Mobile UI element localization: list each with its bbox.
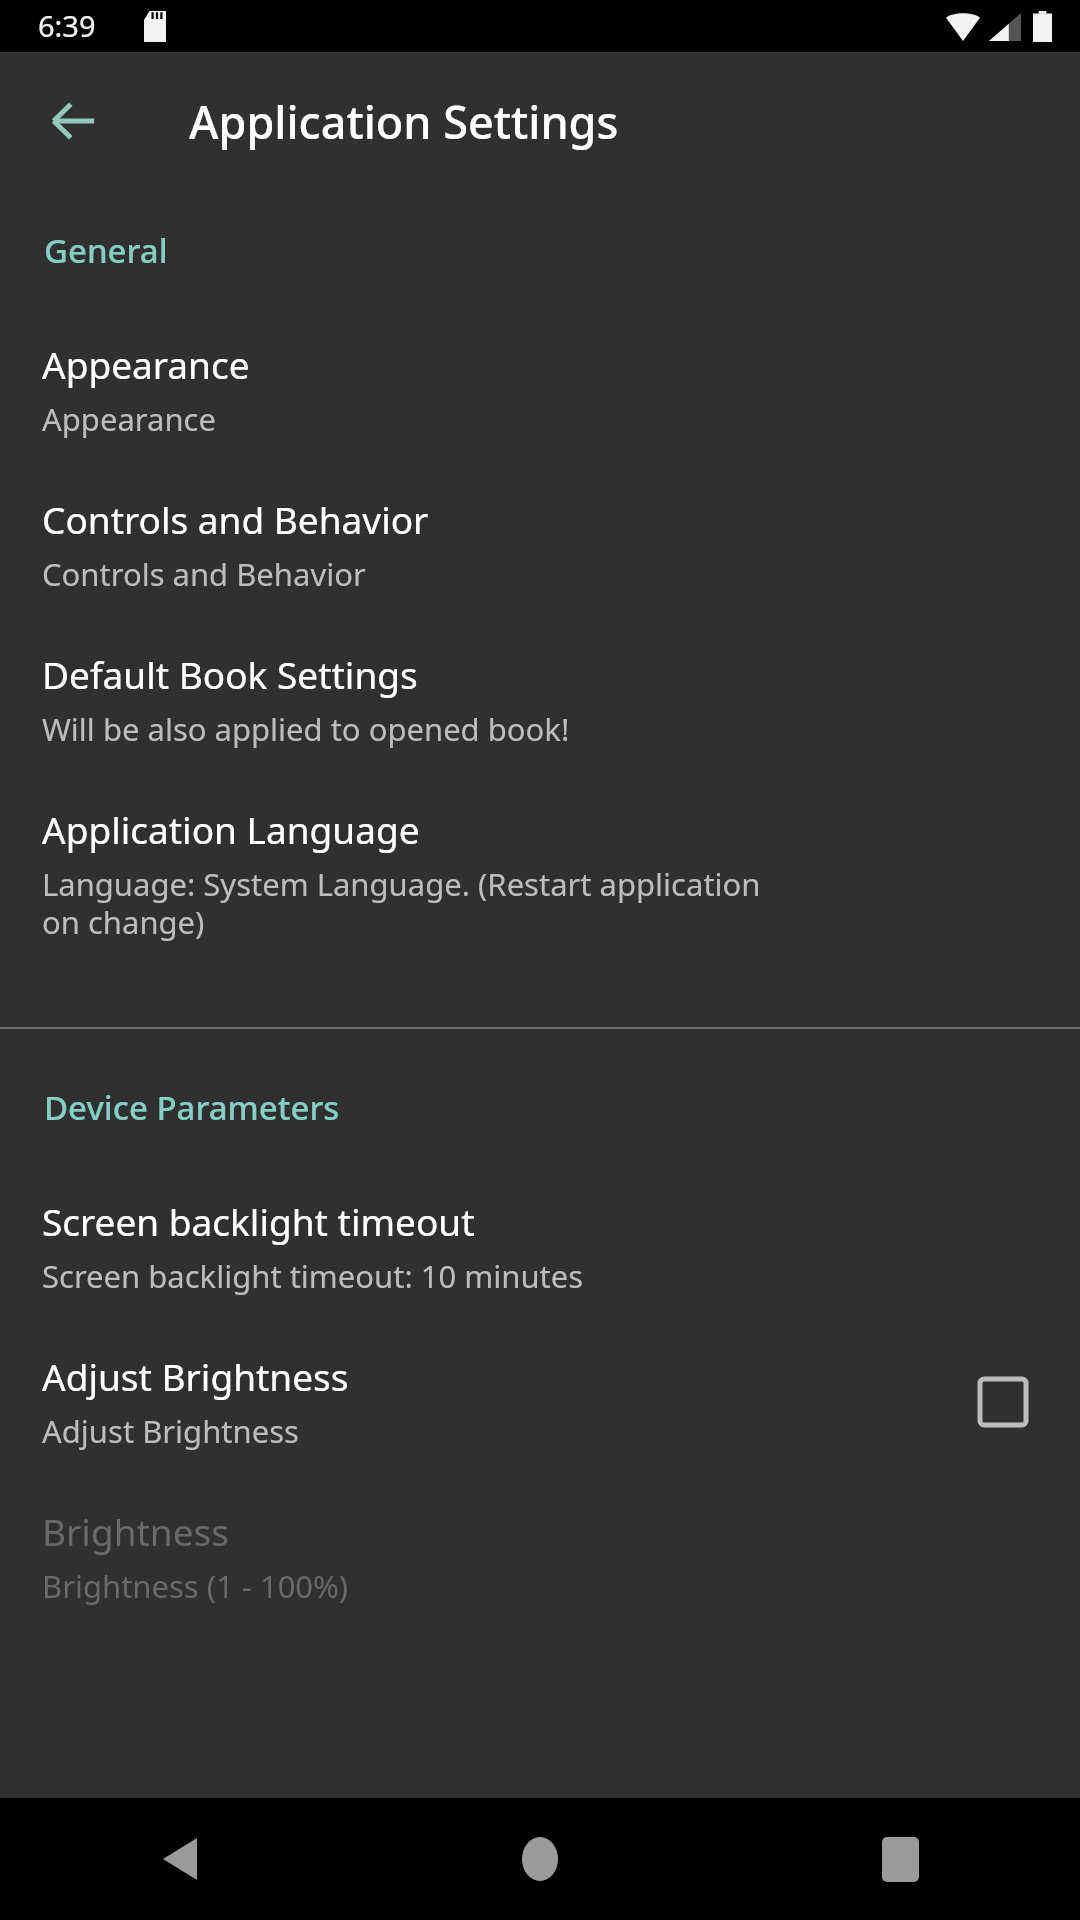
button[interactable]: Home	[360, 1798, 720, 1920]
staticText: Appearance	[42, 339, 250, 389]
staticText: 6:39	[38, 6, 96, 45]
staticText: Device Parameters	[44, 1085, 340, 1130]
staticText: Appearance	[42, 398, 802, 440]
button[interactable]: Default Book Settings	[0, 635, 1080, 790]
staticText: Screen backlight timeout: 10 minutes	[42, 1255, 802, 1297]
button[interactable]: Recent apps	[720, 1798, 1080, 1920]
staticText: Adjust Brightness	[42, 1410, 802, 1452]
staticText: Default Book Settings	[42, 649, 418, 699]
button[interactable]: Brightness	[0, 1492, 1080, 1647]
button[interactable]: Screen backlight timeout	[0, 1182, 1080, 1337]
staticText: Application Settings	[189, 91, 619, 152]
staticText: Adjust Brightness	[42, 1351, 349, 1401]
staticText: Application Language	[42, 804, 420, 854]
button[interactable]: Application Language	[0, 790, 1080, 983]
staticText: Controls and Behavior	[42, 494, 429, 544]
staticText: Screen backlight timeout	[42, 1196, 475, 1246]
staticText: Brightness (1 - 100%)	[42, 1565, 802, 1607]
button[interactable]: Back	[17, 65, 129, 177]
staticText: Language: System Language. (Restart appl…	[42, 863, 802, 943]
staticText: General	[44, 228, 168, 273]
staticText: Brightness	[42, 1506, 230, 1556]
staticText: Controls and Behavior	[42, 553, 802, 595]
staticText: Will be also applied to opened book!	[42, 708, 802, 750]
button[interactable]: Back	[0, 1798, 360, 1920]
button[interactable]: Controls and Behavior	[0, 480, 1080, 635]
button[interactable]: Adjust Brightness	[0, 1337, 1080, 1492]
button[interactable]: Appearance	[0, 325, 1080, 480]
button[interactable]: Adjust Brightness toggle	[966, 1365, 1040, 1439]
